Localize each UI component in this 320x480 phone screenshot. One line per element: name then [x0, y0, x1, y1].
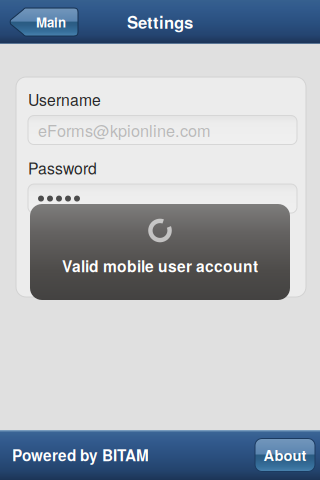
staticText: About [263, 444, 306, 465]
button[interactable] [28, 184, 297, 213]
button[interactable]: Main [0, 3, 83, 41]
staticText: Main [36, 12, 66, 32]
staticText: eForms@kpionline.com [38, 118, 211, 142]
staticText: Username [28, 88, 101, 110]
button[interactable]: eForms@kpionline.com [28, 115, 297, 144]
staticText: Valid mobile user account [62, 255, 258, 277]
staticText: Settings [127, 10, 193, 34]
button[interactable]: About [252, 433, 320, 477]
staticText: Password [28, 156, 97, 179]
staticText: Powered by BITAM [12, 444, 149, 466]
